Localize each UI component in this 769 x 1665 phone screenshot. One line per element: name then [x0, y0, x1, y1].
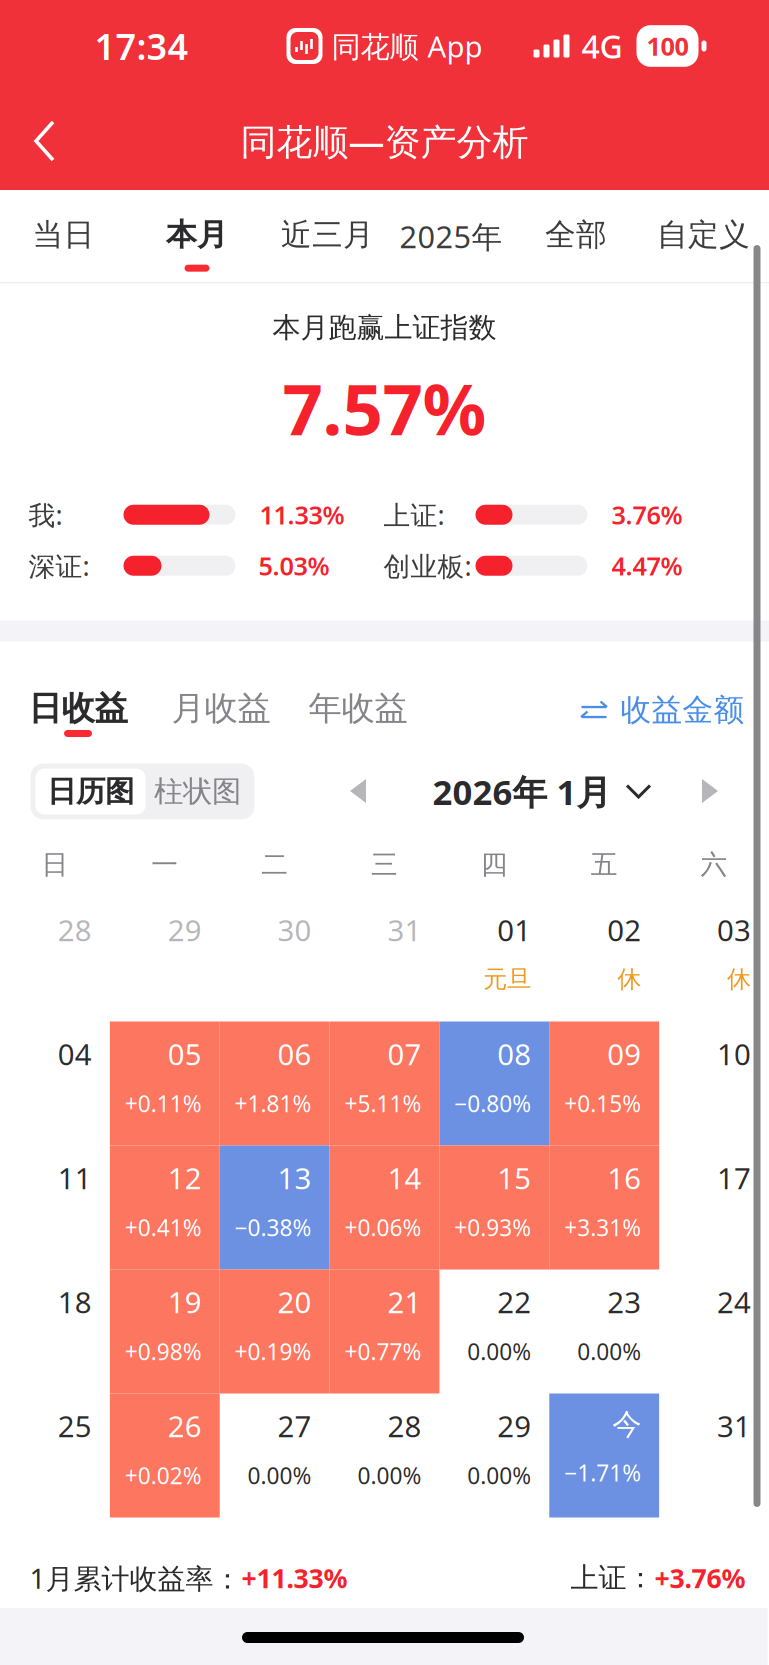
button[interactable]: 01 — [439, 897, 549, 1021]
staticText: 28 — [58, 910, 92, 949]
button[interactable]: 2026年 1月 — [432, 762, 651, 820]
button[interactable]: 自定义 — [639, 190, 767, 282]
button[interactable]: 29 — [439, 1393, 549, 1517]
staticText: 05 — [168, 1034, 202, 1073]
staticText: 四 — [481, 848, 508, 881]
staticText: −0.80% — [454, 1088, 531, 1119]
button[interactable]: 28 — [0, 897, 110, 1021]
button[interactable]: 14 — [330, 1145, 439, 1269]
staticText: 11.33% — [259, 498, 344, 531]
button[interactable]: 13 — [220, 1145, 329, 1269]
staticText: 本月 — [166, 216, 228, 254]
staticText: 09 — [607, 1034, 641, 1073]
button[interactable]: 15 — [439, 1145, 549, 1269]
staticText: 100 — [646, 29, 688, 63]
button[interactable]: 31 — [330, 897, 439, 1021]
staticText: 同花顺 App — [331, 26, 482, 65]
button[interactable]: 06 — [220, 1021, 329, 1145]
staticText: 02 — [607, 910, 641, 949]
staticText: 28 — [387, 1406, 421, 1445]
staticText: −1.71% — [564, 1457, 641, 1488]
staticText: 六 — [700, 848, 727, 881]
staticText: +0.19% — [235, 1336, 312, 1367]
button[interactable]: 30 — [220, 897, 329, 1021]
button[interactable]: 12 — [110, 1145, 220, 1269]
button[interactable]: 08 — [439, 1021, 549, 1145]
staticText: 20 — [278, 1282, 312, 1321]
button[interactable]: 日收益 — [28, 688, 127, 737]
button[interactable]: 上个月 — [331, 762, 385, 820]
staticText: +0.93% — [454, 1212, 531, 1243]
button[interactable]: 10 — [659, 1021, 769, 1145]
button[interactable]: 2025年 — [389, 190, 512, 282]
button[interactable]: 04 — [0, 1021, 110, 1145]
staticText: 同花顺—资产分析 — [240, 117, 528, 165]
staticText: 27 — [278, 1406, 312, 1445]
button[interactable]: 18 — [0, 1269, 110, 1393]
button[interactable]: 24 — [659, 1269, 769, 1393]
staticText: 01 — [497, 910, 531, 949]
button[interactable]: 下个月 — [683, 762, 737, 820]
staticText: 日 — [41, 848, 68, 881]
button[interactable]: 月收益 — [171, 688, 270, 737]
button[interactable]: 23 — [549, 1269, 659, 1393]
staticText: +0.41% — [125, 1212, 202, 1243]
staticText: +0.98% — [125, 1336, 202, 1367]
staticText: 18 — [58, 1282, 92, 1321]
button[interactable]: 27 — [220, 1393, 329, 1517]
button[interactable]: 全部 — [512, 190, 639, 282]
button[interactable]: 28 — [330, 1393, 439, 1517]
button[interactable]: 07 — [330, 1021, 439, 1145]
button[interactable]: 25 — [0, 1393, 110, 1517]
staticText: +1.81% — [235, 1088, 312, 1119]
button[interactable]: 29 — [110, 897, 220, 1021]
button[interactable]: 返回 — [0, 96, 90, 186]
button[interactable]: 当日 — [0, 190, 128, 282]
button[interactable]: 今 — [549, 1393, 659, 1517]
button[interactable]: 19 — [110, 1269, 220, 1393]
staticText: 08 — [497, 1034, 531, 1073]
button[interactable]: 26 — [110, 1393, 220, 1517]
staticText: 月收益 — [171, 688, 270, 729]
button[interactable]: 03 — [659, 897, 769, 1021]
button[interactable]: 收益金额 — [580, 688, 744, 732]
button[interactable]: 17 — [659, 1145, 769, 1269]
button[interactable]: 日历图 — [35, 768, 145, 814]
staticText: 5.03% — [258, 549, 329, 582]
staticText: 休 — [727, 964, 751, 994]
staticText: 上证: — [383, 497, 444, 532]
staticText: 16 — [607, 1158, 641, 1197]
button[interactable]: 20 — [220, 1269, 329, 1393]
staticText: +3.76% — [654, 1560, 745, 1596]
staticText: 深证: — [28, 548, 89, 583]
button[interactable]: 22 — [439, 1269, 549, 1393]
button[interactable]: 31 — [659, 1393, 769, 1517]
staticText: 五 — [591, 848, 618, 881]
button[interactable]: 02 — [549, 897, 659, 1021]
staticText: 21 — [387, 1282, 421, 1321]
staticText: 0.00% — [467, 1336, 531, 1367]
staticText: +0.06% — [344, 1212, 421, 1243]
staticText: 三 — [371, 848, 398, 881]
button[interactable]: 09 — [549, 1021, 659, 1145]
button[interactable]: 21 — [330, 1269, 439, 1393]
staticText: 0.00% — [577, 1336, 641, 1367]
button[interactable]: 05 — [110, 1021, 220, 1145]
button[interactable]: 年收益 — [308, 688, 407, 737]
button[interactable]: 11 — [0, 1145, 110, 1269]
staticText: 元旦 — [483, 964, 531, 994]
button[interactable]: 柱状图 — [145, 768, 249, 814]
button[interactable]: 本月 — [128, 190, 265, 282]
staticText: 4G — [581, 25, 622, 67]
staticText: 柱状图 — [154, 773, 241, 809]
button[interactable]: 近三月 — [265, 190, 389, 282]
button[interactable]: 16 — [549, 1145, 659, 1269]
staticText: 创业板: — [383, 548, 471, 583]
staticText: 17 — [717, 1158, 751, 1197]
